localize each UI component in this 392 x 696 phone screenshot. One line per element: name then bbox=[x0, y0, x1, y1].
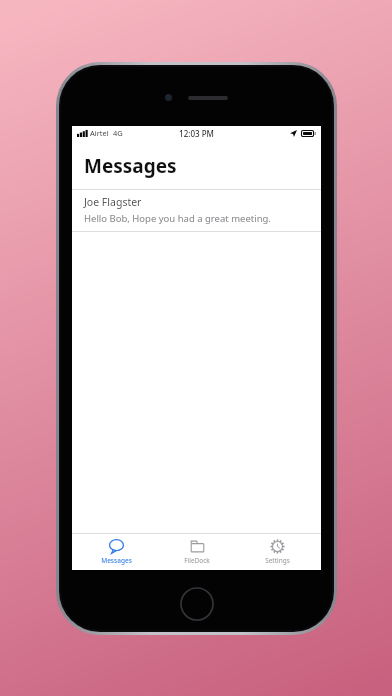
button[interactable]: Settings bbox=[241, 534, 313, 570]
staticText: 4G bbox=[113, 128, 123, 138]
staticText: Joe Flagster bbox=[84, 195, 142, 209]
button[interactable]: Joe Flagster bbox=[72, 190, 321, 231]
staticText: Hello Bob, Hope you had a great meeting. bbox=[84, 212, 271, 225]
staticText: Messages bbox=[101, 556, 132, 565]
staticText: Airtel bbox=[90, 128, 109, 138]
button[interactable]: FileDock bbox=[161, 534, 233, 570]
staticText: FileDock bbox=[184, 556, 210, 565]
staticText: 12:03 PM bbox=[179, 128, 214, 139]
staticText: Messages bbox=[84, 153, 177, 179]
button[interactable]: Messages bbox=[80, 534, 152, 570]
staticText: Settings bbox=[265, 556, 290, 565]
